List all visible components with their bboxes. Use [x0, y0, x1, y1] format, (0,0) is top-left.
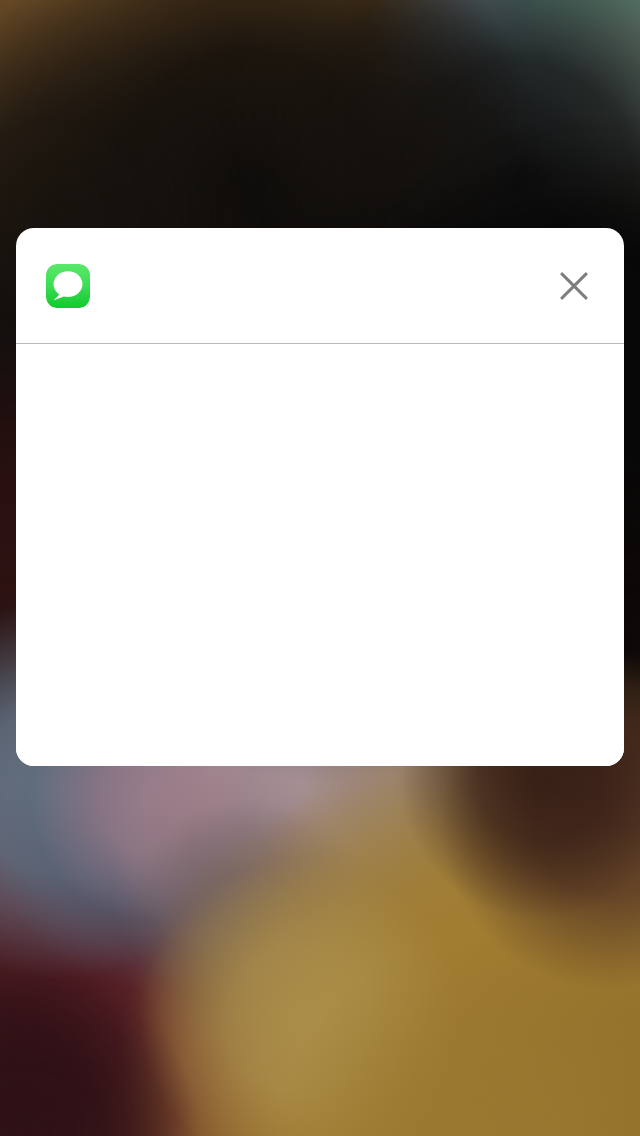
button[interactable]: Close [552, 264, 596, 308]
button[interactable]: Messages [46, 264, 90, 308]
